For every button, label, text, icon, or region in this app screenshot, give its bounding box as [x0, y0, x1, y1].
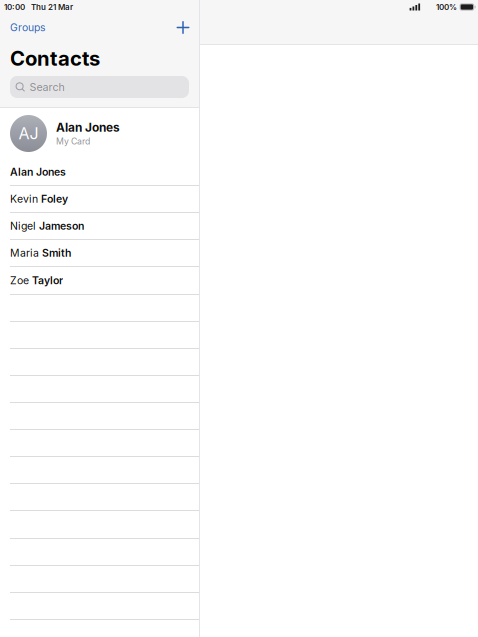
button[interactable]: Zoe Taylor [0, 267, 199, 295]
staticText: 100% [436, 2, 457, 12]
button[interactable]: Alan Jones [0, 159, 199, 186]
staticText: Kevin Foley [10, 193, 68, 205]
button[interactable]: Kevin Foley [0, 186, 199, 213]
button[interactable]: Search [10, 76, 189, 98]
button[interactable]: Maria Smith [0, 240, 199, 267]
staticText: Search [30, 80, 65, 93]
button[interactable]: Nigel Jameson [0, 213, 199, 240]
button[interactable]: Groups [0, 16, 51, 39]
staticText: Thu 21 Mar [31, 2, 73, 12]
staticText: AJ [18, 124, 38, 143]
button[interactable]: AJ [0, 108, 199, 159]
staticText: 10:00 [4, 2, 25, 12]
button[interactable]: Add contact [175, 17, 199, 37]
staticText: Alan Jones [10, 166, 66, 178]
staticText: Nigel Jameson [10, 220, 84, 232]
staticText: Maria Smith [10, 247, 71, 259]
staticText: Alan Jones [56, 120, 120, 135]
staticText: Zoe Taylor [10, 274, 63, 287]
staticText: Contacts [10, 46, 100, 71]
staticText: My Card [56, 136, 90, 147]
staticText: Groups [10, 21, 45, 34]
